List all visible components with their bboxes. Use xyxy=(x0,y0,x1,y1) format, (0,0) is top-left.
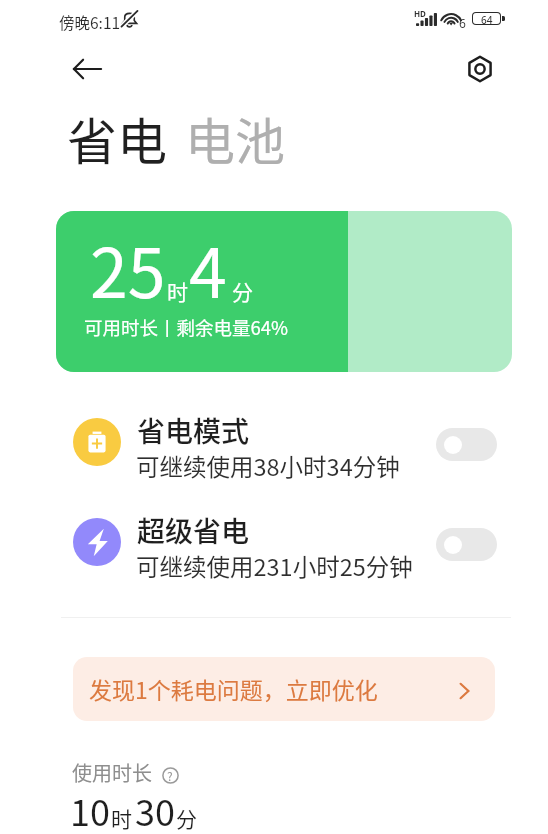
button[interactable]: Back xyxy=(64,46,110,92)
button[interactable]: Help xyxy=(160,765,180,785)
button[interactable]: 省电模式 xyxy=(436,428,497,461)
staticText: 分 xyxy=(176,803,197,833)
staticText: 分 xyxy=(232,276,253,306)
button[interactable]: 超级省电 xyxy=(56,516,512,594)
staticText: 25 xyxy=(90,219,166,317)
staticText: 可继续使用231小时25分钟 xyxy=(136,549,413,583)
staticText: 可用时长丨剩余电量64% xyxy=(84,314,289,341)
staticText: ? xyxy=(167,767,173,784)
button[interactable]: 超级省电 xyxy=(436,528,497,561)
staticText: 10 xyxy=(70,784,110,834)
staticText: 64 xyxy=(481,13,493,24)
staticText: 省电模式 xyxy=(137,410,250,451)
staticText: 超级省电 xyxy=(137,510,250,551)
button[interactable]: 电池 xyxy=(185,102,285,174)
staticText: HD xyxy=(414,8,426,19)
staticText: 发现1个耗电问题，立即优化 xyxy=(89,672,378,705)
staticText: 4 xyxy=(189,219,227,317)
button[interactable]: 省电模式 xyxy=(56,416,512,494)
button[interactable]: 25 xyxy=(56,211,512,372)
staticText: 傍晚6:11 xyxy=(59,11,121,33)
staticText: 6 xyxy=(459,15,466,31)
staticText: 可继续使用38小时34分钟 xyxy=(136,449,400,483)
staticText: 30 xyxy=(135,784,175,834)
button[interactable]: 省电 xyxy=(67,102,167,174)
button[interactable]: 发现1个耗电问题，立即优化 xyxy=(73,657,495,721)
staticText: 时 xyxy=(167,276,188,306)
staticText: 时 xyxy=(111,803,132,833)
staticText: 使用时长 xyxy=(72,758,152,787)
button[interactable]: Settings xyxy=(457,46,503,92)
